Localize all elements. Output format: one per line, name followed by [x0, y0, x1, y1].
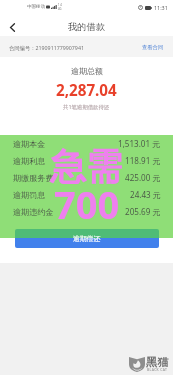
- staticText: 逾期利息: [13, 156, 46, 166]
- staticText: 黑猫: [146, 355, 169, 369]
- staticText: 700: [54, 178, 120, 230]
- staticText: 合同编号：2190911779907941: [9, 44, 84, 51]
- staticText: 1,513.01 元: [118, 138, 161, 149]
- staticText: 急需: [50, 144, 122, 189]
- staticText: 425.00 元: [125, 172, 161, 183]
- staticText: 11:31: [154, 4, 168, 11]
- staticText: 查看合同: [142, 44, 164, 51]
- staticText: 我的借款: [68, 21, 106, 33]
- staticText: 24.43 元: [130, 189, 161, 200]
- button[interactable]: Back: [4, 19, 21, 36]
- button[interactable]: 合同编号：2190911779907941: [0, 36, 173, 57]
- staticText: 1 4: [58, 3, 62, 7]
- staticText: 2,287.04: [56, 80, 117, 101]
- staticText: 逾期罚息: [13, 190, 46, 200]
- staticText: 逾期偿还: [73, 234, 101, 243]
- staticText: 逾期违约金: [13, 207, 54, 217]
- staticText: 逾期总额: [71, 66, 103, 76]
- staticText: 共1笔逾期借款待还: [63, 103, 110, 110]
- staticText: 中国移动: [27, 4, 45, 10]
- staticText: 期缴服务费: [13, 173, 54, 183]
- staticText: 逾期本金: [13, 139, 46, 149]
- staticText: 205.69 元: [125, 206, 161, 217]
- staticText: 118.91 元: [125, 155, 161, 166]
- staticText: 4G: [58, 7, 62, 11]
- staticText: BLACK CAT: [147, 367, 168, 372]
- button[interactable]: 逾期偿还: [15, 229, 159, 248]
